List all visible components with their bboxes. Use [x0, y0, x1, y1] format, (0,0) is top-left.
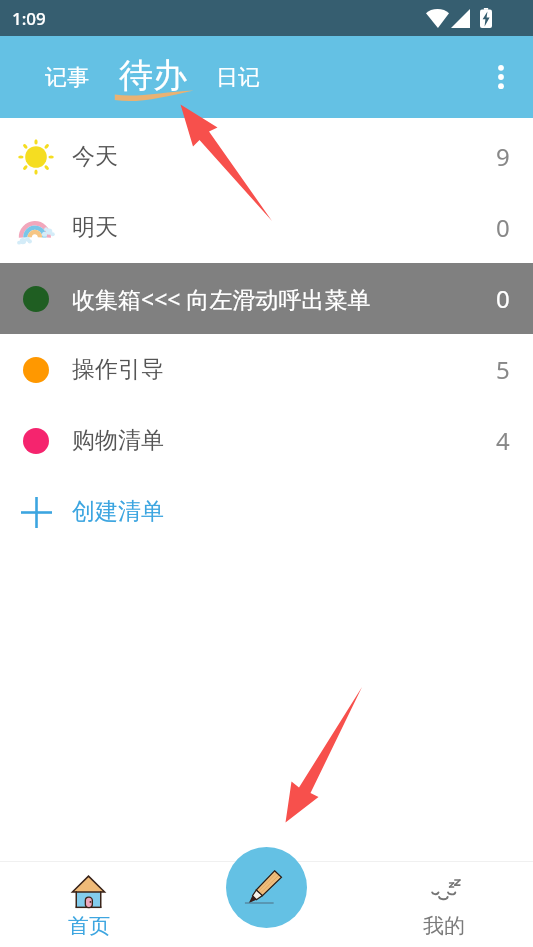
button[interactable]: 记事: [45, 64, 89, 92]
button[interactable]: 创建清单: [0, 476, 533, 547]
button[interactable]: 首页: [0, 861, 177, 947]
staticText: 首页: [68, 913, 110, 939]
staticText: 1:09: [12, 7, 46, 30]
button[interactable]: Create note: [226, 847, 307, 928]
button[interactable]: 操作引导: [0, 334, 533, 405]
button[interactable]: 今天: [0, 121, 533, 192]
staticText: 0: [496, 211, 510, 244]
staticText: 记事: [45, 64, 89, 92]
staticText: 9: [496, 140, 510, 173]
staticText: 0: [496, 282, 510, 315]
button[interactable]: 日记: [216, 64, 260, 92]
staticText: 收集箱<<< 向左滑动呼出菜单: [72, 283, 496, 314]
button[interactable]: 购物清单: [0, 405, 533, 476]
staticText: 操作引导: [72, 355, 496, 384]
staticText: 今天: [72, 142, 496, 171]
button[interactable]: 收集箱<<< 向左滑动呼出菜单: [0, 263, 533, 334]
staticText: 购物清单: [72, 426, 496, 455]
staticText: 4: [496, 424, 510, 457]
staticText: 待办: [119, 54, 187, 97]
button[interactable]: 我的: [355, 861, 533, 947]
staticText: 明天: [72, 213, 496, 242]
button[interactable]: More options: [477, 53, 525, 101]
button[interactable]: 待办: [119, 54, 199, 107]
staticText: 5: [496, 353, 510, 386]
staticText: 我的: [423, 913, 465, 939]
staticText: 创建清单: [72, 497, 164, 526]
staticText: 日记: [216, 64, 260, 92]
button[interactable]: 明天: [0, 192, 533, 263]
